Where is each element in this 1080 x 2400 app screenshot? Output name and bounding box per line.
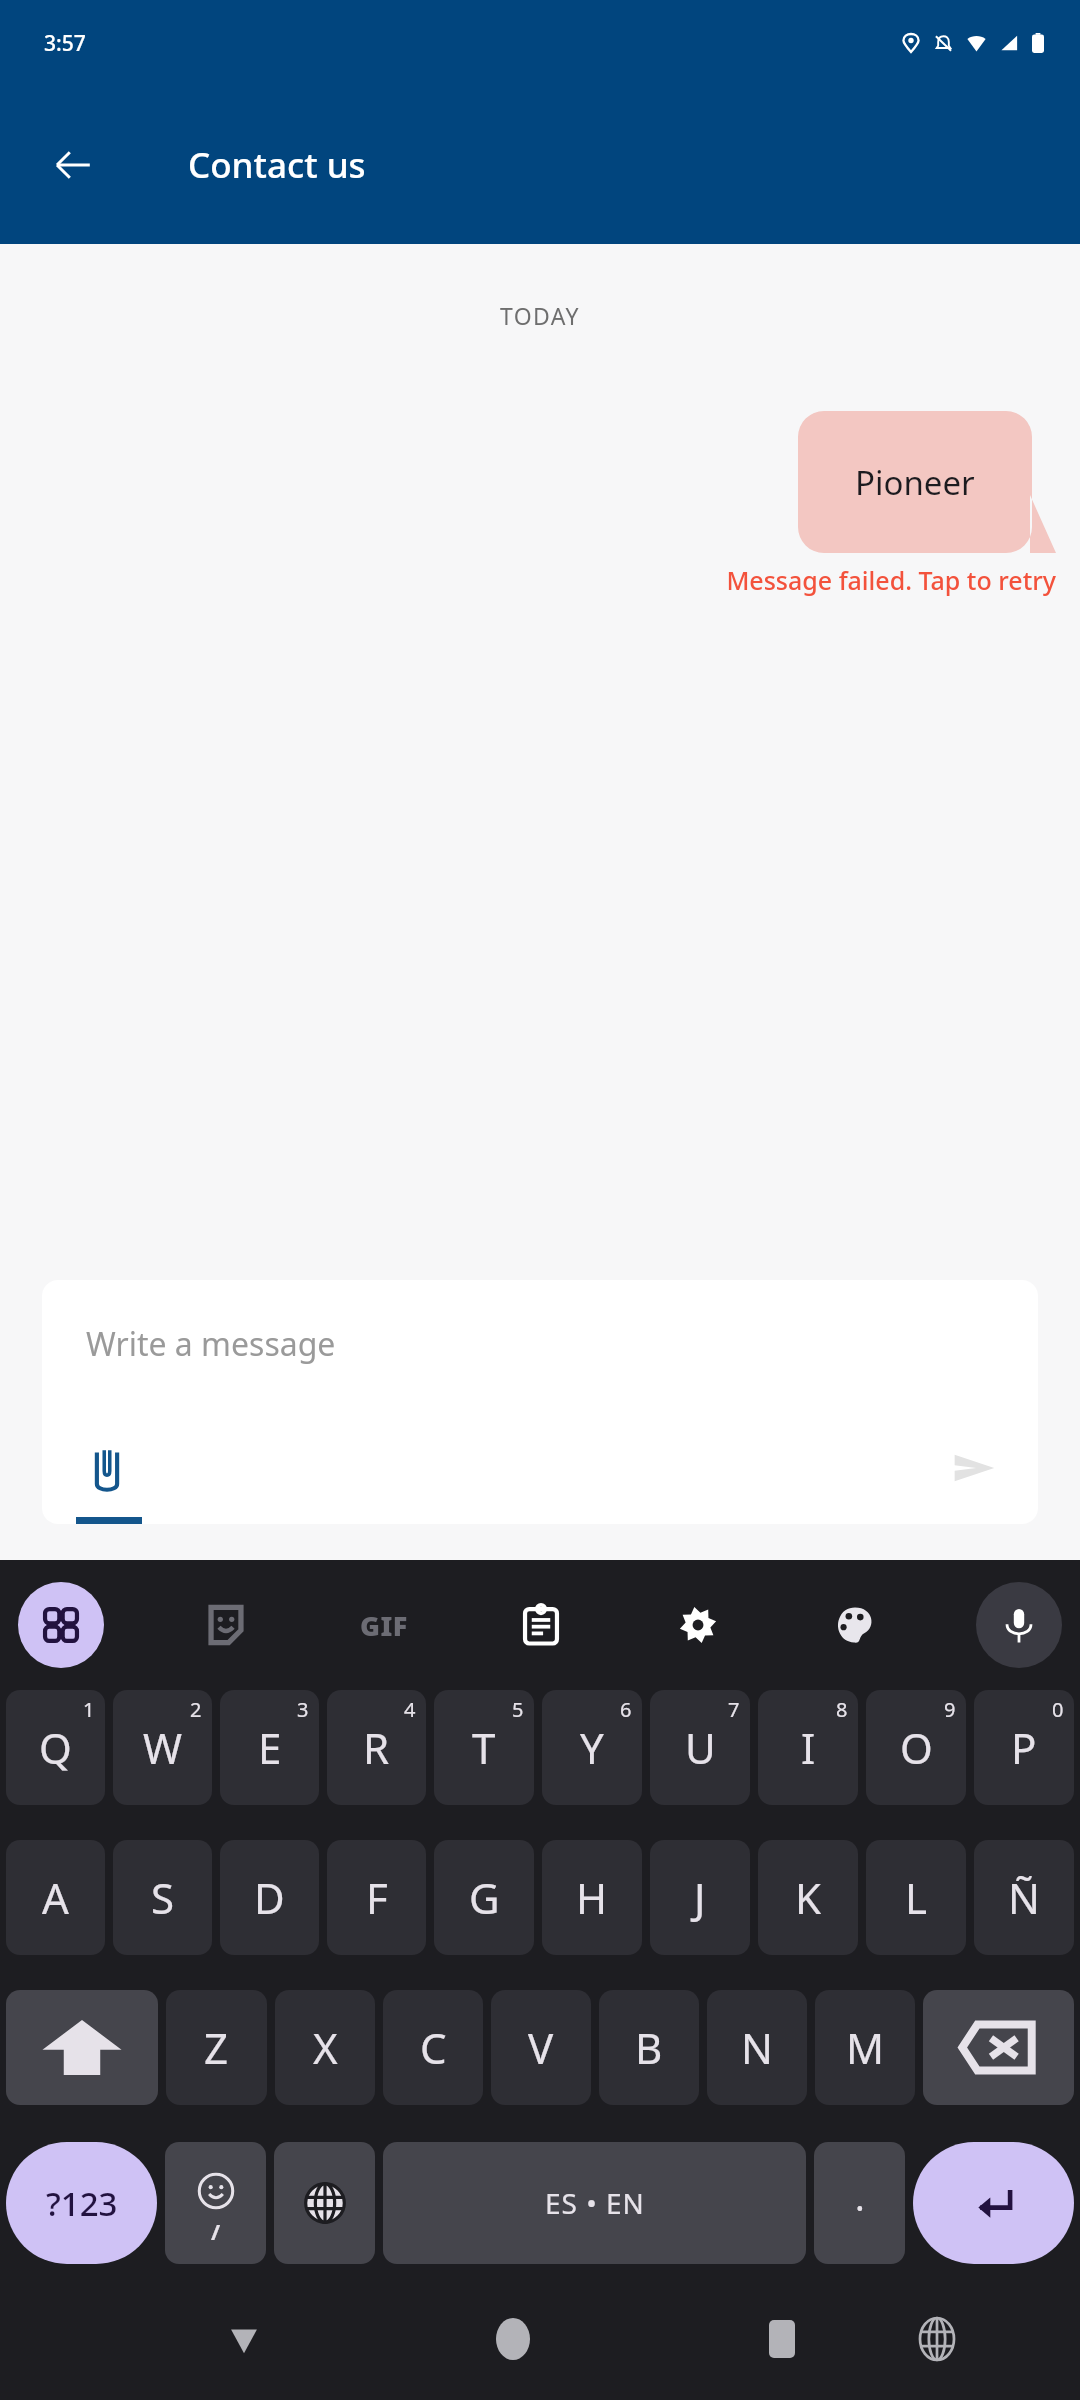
staticText: J (694, 1869, 706, 1926)
button[interactable]: Recents (739, 2296, 825, 2382)
button[interactable]: C (383, 1990, 483, 2105)
staticText: . (855, 2173, 865, 2222)
button[interactable]: R (327, 1690, 426, 1805)
button[interactable]: Emoji (165, 2142, 266, 2264)
button[interactable]: Back (201, 2296, 287, 2382)
button[interactable]: Shift (6, 1990, 158, 2105)
staticText: Y (580, 1719, 604, 1776)
button[interactable]: N (707, 1990, 807, 2105)
button[interactable]: D (220, 1840, 319, 1955)
staticText: I (801, 1719, 816, 1776)
button[interactable]: Pioneer (798, 411, 1056, 553)
button[interactable]: Stickers (190, 1589, 262, 1661)
staticText: ES • EN (545, 2184, 645, 2222)
staticText: 3:57 (44, 29, 86, 58)
button[interactable]: Ñ (974, 1840, 1074, 1955)
staticText: K (795, 1869, 821, 1926)
staticText: T (472, 1719, 496, 1776)
staticText: R (363, 1719, 390, 1776)
staticText: 9 (944, 1696, 956, 1723)
button[interactable]: L (866, 1840, 966, 1955)
button[interactable]: Settings (662, 1589, 734, 1661)
staticText: P (1011, 1719, 1037, 1776)
button[interactable]: Back (28, 120, 118, 210)
button[interactable]: Q (6, 1690, 105, 1805)
button[interactable]: Z (166, 1990, 267, 2105)
button[interactable]: B (599, 1990, 699, 2105)
staticText: U (685, 1719, 716, 1776)
button[interactable]: V (491, 1990, 591, 2105)
button[interactable]: . (814, 2142, 905, 2264)
staticText: Ñ (1008, 1869, 1040, 1926)
button[interactable]: F (327, 1840, 426, 1955)
staticText: ?123 (46, 2181, 118, 2226)
staticText: L (905, 1869, 928, 1926)
staticText: 3 (297, 1696, 309, 1723)
staticText: E (258, 1719, 282, 1776)
staticText: G (469, 1869, 500, 1926)
staticText: O (900, 1719, 933, 1776)
staticText: S (151, 1869, 175, 1926)
staticText: B (635, 2019, 663, 2076)
button[interactable]: Message failed. Tap to retry (0, 563, 1056, 597)
staticText: C (420, 2019, 447, 2076)
staticText: Pioneer (855, 460, 975, 505)
staticText: / (211, 2216, 221, 2246)
button[interactable]: Change language (274, 2142, 375, 2264)
button[interactable]: Send (944, 1438, 1004, 1498)
button[interactable]: T (434, 1690, 534, 1805)
button[interactable]: U (650, 1690, 750, 1805)
button[interactable]: H (542, 1840, 642, 1955)
staticText: X (313, 2019, 338, 2076)
button[interactable]: Write a message (42, 1280, 1038, 1524)
staticText: Q (39, 1719, 72, 1776)
staticText: 6 (620, 1696, 632, 1723)
button[interactable]: M (815, 1990, 915, 2105)
button[interactable]: P (974, 1690, 1074, 1805)
button[interactable]: ?123 (6, 2142, 157, 2264)
button[interactable]: Y (542, 1690, 642, 1805)
staticText: N (741, 2019, 773, 2076)
staticText: 4 (404, 1696, 416, 1723)
button[interactable]: Clipboard (505, 1589, 577, 1661)
button[interactable]: S (113, 1840, 212, 1955)
button[interactable]: O (866, 1690, 966, 1805)
staticText: 2 (190, 1696, 202, 1723)
button[interactable]: X (275, 1990, 375, 2105)
staticText: 0 (1052, 1696, 1064, 1723)
staticText: A (42, 1869, 69, 1926)
button[interactable]: Home (470, 2296, 556, 2382)
button[interactable]: Keyboard modes (18, 1582, 104, 1668)
staticText: F (366, 1869, 388, 1926)
staticText: M (846, 2019, 885, 2076)
staticText: TODAY (0, 300, 1080, 331)
button[interactable]: Voice input (976, 1582, 1062, 1668)
button[interactable]: W (113, 1690, 212, 1805)
button[interactable]: GIF (348, 1589, 420, 1661)
staticText: 8 (836, 1696, 848, 1723)
button[interactable]: E (220, 1690, 319, 1805)
staticText: 1 (83, 1696, 95, 1723)
button[interactable]: Backspace (923, 1990, 1074, 2105)
staticText: V (528, 2019, 554, 2076)
staticText: H (576, 1869, 608, 1926)
button[interactable]: Enter (913, 2142, 1074, 2264)
button[interactable]: A (6, 1840, 105, 1955)
button[interactable]: Themes (819, 1589, 891, 1661)
staticText: Z (204, 2019, 229, 2076)
button[interactable]: Switch input method (894, 2296, 980, 2382)
staticText: 7 (728, 1696, 740, 1723)
button[interactable]: K (758, 1840, 858, 1955)
button[interactable]: J (650, 1840, 750, 1955)
staticText: W (143, 1719, 183, 1776)
button[interactable]: I (758, 1690, 858, 1805)
staticText: Contact us (188, 141, 366, 189)
button[interactable]: G (434, 1840, 534, 1955)
staticText: Write a message (86, 1322, 336, 1366)
staticText: D (254, 1869, 285, 1926)
button[interactable]: Attach file (76, 1440, 138, 1502)
staticText: 5 (512, 1696, 524, 1723)
button[interactable]: ES • EN (383, 2142, 806, 2264)
staticText: GIF (360, 1607, 408, 1644)
